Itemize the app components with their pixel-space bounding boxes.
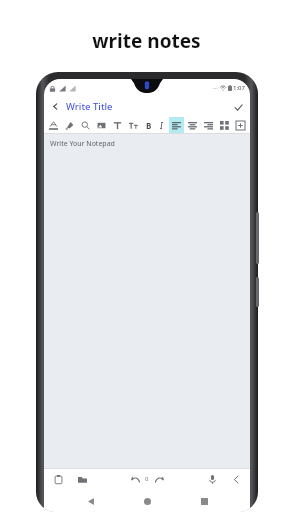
staticText: 1:07 — [233, 84, 245, 92]
button[interactable]: I — [155, 117, 168, 133]
button[interactable]: Align right — [201, 117, 216, 133]
button[interactable]: Folder — [74, 471, 90, 487]
button[interactable]: Align left — [169, 117, 184, 133]
button[interactable]: Back — [81, 491, 101, 511]
button[interactable]: B — [142, 117, 155, 133]
staticText: Write Title — [66, 100, 113, 113]
staticText: Write Your Notepad — [50, 139, 115, 149]
button[interactable]: Redo — [151, 471, 167, 487]
button[interactable]: Insert image — [94, 117, 109, 133]
button[interactable]: Search — [78, 117, 93, 133]
button[interactable]: Highlight — [62, 117, 77, 133]
button[interactable]: Add — [233, 117, 248, 133]
button[interactable]: Voice input — [204, 471, 220, 487]
button[interactable]: Save — [231, 100, 245, 114]
staticText: ··· — [213, 84, 218, 92]
button[interactable]: Table — [217, 117, 232, 133]
staticText: 0 — [145, 475, 149, 483]
button[interactable]: Clipboard — [50, 471, 66, 487]
button[interactable]: Text color — [46, 117, 61, 133]
staticText: write notes — [92, 28, 201, 54]
button[interactable]: Home — [137, 491, 157, 511]
button[interactable]: Collapse — [228, 471, 244, 487]
button[interactable]: Recents — [194, 491, 214, 511]
button[interactable]: Text size — [126, 117, 141, 133]
button[interactable]: Font — [110, 117, 125, 133]
button[interactable]: Undo — [127, 471, 143, 487]
staticText: I — [160, 120, 163, 131]
button[interactable]: Align center — [185, 117, 200, 133]
button[interactable]: Back — [49, 100, 62, 113]
staticText: B — [146, 120, 152, 131]
